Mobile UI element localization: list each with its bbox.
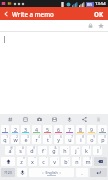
button[interactable]: Enter — [90, 168, 107, 177]
button[interactable]: OK — [90, 7, 108, 20]
staticText: 6 — [60, 135, 62, 139]
staticText: 3 — [24, 126, 27, 133]
button[interactable]: 2 — [11, 125, 19, 133]
button[interactable]: 6 — [54, 125, 63, 133]
staticText: 9 — [90, 126, 93, 133]
staticText: 0 — [104, 135, 106, 139]
button[interactable]: ?123 — [1, 168, 15, 177]
button[interactable]: w — [11, 135, 19, 144]
button[interactable]: Voice input — [17, 168, 27, 177]
button[interactable]: 8 — [76, 125, 85, 133]
staticText: 7 — [68, 126, 71, 133]
staticText: b — [64, 158, 68, 165]
staticText: c — [42, 158, 45, 165]
button[interactable]: o — [87, 135, 96, 144]
staticText: y — [57, 136, 60, 143]
button[interactable]: g — [49, 146, 58, 155]
button[interactable]: d — [27, 146, 36, 155]
staticText: i — [80, 136, 82, 143]
button[interactable]: u — [65, 135, 74, 144]
button[interactable]: 3 — [21, 125, 30, 133]
button[interactable]: f — [38, 146, 47, 155]
staticText: p — [101, 136, 105, 143]
button[interactable]: Backspace — [94, 157, 107, 166]
button[interactable]: z — [17, 157, 26, 166]
staticText: - — [67, 146, 68, 150]
staticText: x — [31, 158, 34, 165]
button[interactable]: Favorite memo — [96, 21, 105, 30]
button[interactable]: i — [76, 135, 85, 144]
button[interactable]: k — [82, 146, 91, 155]
button[interactable]: j — [71, 146, 80, 155]
staticText: n — [75, 158, 79, 165]
staticText: u — [68, 136, 72, 143]
button[interactable]: s — [16, 146, 25, 155]
button[interactable]: Write a memo — [0, 7, 57, 20]
button[interactable]: 1 — [1, 125, 9, 133]
button[interactable]: Camera — [34, 114, 44, 124]
button[interactable]: Share — [79, 114, 89, 124]
button[interactable]: h — [60, 146, 69, 155]
button[interactable]: n — [72, 157, 81, 166]
staticText: OK — [94, 10, 104, 18]
staticText: h — [63, 147, 67, 154]
staticText: 0 — [101, 126, 104, 133]
staticText: ( — [89, 146, 90, 150]
button[interactable]: . — [76, 168, 88, 177]
button[interactable]: 7 — [65, 125, 74, 133]
staticText: 13:54 — [95, 1, 106, 7]
button[interactable]: 5 — [43, 125, 52, 133]
staticText: q — [3, 136, 7, 143]
staticText: 6 — [57, 126, 60, 133]
button[interactable]: q — [1, 135, 9, 144]
button[interactable]: Lock memo — [86, 21, 95, 30]
staticText: ' — [46, 157, 47, 161]
staticText: j — [75, 147, 77, 154]
button[interactable]: 9 — [87, 125, 96, 133]
staticText: o — [90, 136, 94, 143]
staticText: Write a memo — [12, 10, 54, 18]
button[interactable]: r — [32, 135, 41, 144]
staticText: f — [42, 147, 44, 154]
button[interactable]: Stickers — [20, 114, 30, 124]
staticText: _ — [44, 146, 46, 150]
staticText: ! — [79, 157, 80, 161]
button[interactable]: v — [50, 157, 59, 166]
staticText: 2 — [14, 126, 17, 133]
staticText: s — [19, 147, 22, 154]
button[interactable]: English — [29, 168, 74, 177]
button[interactable]: 0 — [98, 125, 107, 133]
button[interactable]: m — [83, 157, 92, 166]
staticText: a — [8, 147, 12, 154]
button[interactable]: t — [43, 135, 52, 144]
staticText: ? — [89, 157, 91, 161]
button[interactable]: y — [54, 135, 63, 144]
staticText: z — [20, 158, 23, 165]
staticText: t — [47, 136, 49, 143]
staticText: * — [23, 157, 25, 161]
staticText: v — [53, 158, 56, 165]
staticText: 4 — [35, 126, 38, 133]
button[interactable]: Voice — [64, 114, 74, 124]
button[interactable]: c — [39, 157, 48, 166]
staticText: + — [77, 146, 79, 150]
staticText: 8 — [79, 126, 82, 133]
button[interactable]: a — [5, 146, 14, 155]
button[interactable]: Shift — [1, 157, 15, 166]
staticText: w — [13, 136, 18, 143]
button[interactable]: Symbols — [5, 114, 15, 124]
staticText: d — [30, 147, 34, 154]
button[interactable]: l — [93, 146, 102, 155]
button[interactable]: x — [28, 157, 37, 166]
staticText: 89% — [87, 3, 93, 7]
button[interactable]: p — [98, 135, 107, 144]
button[interactable]: Save — [49, 114, 59, 124]
button[interactable]: b — [61, 157, 70, 166]
staticText: 5 — [49, 135, 51, 139]
staticText: 5 — [46, 126, 49, 133]
staticText: ) — [100, 146, 101, 150]
button[interactable]: e — [21, 135, 30, 144]
button[interactable]: 4 — [32, 125, 41, 133]
button[interactable]: Delete — [93, 114, 103, 124]
